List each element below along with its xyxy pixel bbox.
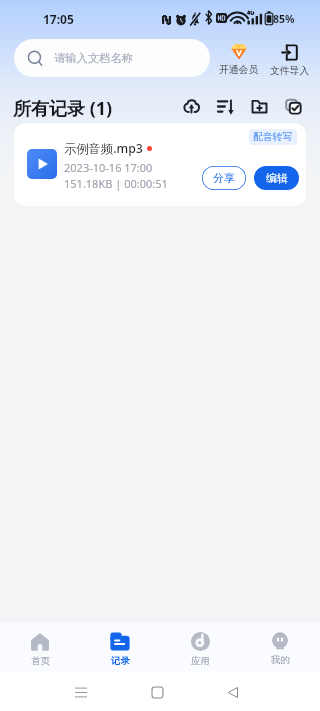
button[interactable]: Back (220, 679, 246, 705)
button[interactable]: 开通会员 (217, 43, 261, 76)
button[interactable]: 我的 (240, 623, 320, 672)
staticText: 首页 (31, 655, 50, 667)
staticText: 17:05 (43, 11, 74, 27)
staticText: 分享 (213, 171, 235, 185)
staticText: 151.18KB | 00:00:51 (64, 176, 168, 191)
button[interactable]: 应用 (160, 623, 240, 672)
button[interactable]: Home (144, 679, 170, 705)
button[interactable]: Select (283, 96, 304, 117)
button[interactable]: Recent apps (68, 679, 94, 705)
button[interactable]: 文件导入 (267, 44, 312, 77)
button[interactable]: 配音转写 (14, 123, 306, 206)
staticText: 我的 (271, 654, 290, 666)
staticText: 记录 (111, 655, 130, 667)
staticText: 2023-10-16 17:00 (64, 160, 153, 175)
staticText: 应用 (191, 655, 210, 667)
staticText: 所有记录 (1) (13, 96, 113, 121)
button[interactable]: Sort (215, 96, 236, 117)
staticText: 文件导入 (270, 65, 310, 77)
staticText: 编辑 (266, 171, 288, 185)
button[interactable]: 分享 (202, 166, 246, 190)
button[interactable]: 记录 (80, 623, 160, 672)
staticText: 示例音频.mp3 (64, 140, 143, 157)
button[interactable]: 首页 (0, 623, 80, 672)
button[interactable]: 请输入文档名称 (14, 39, 210, 77)
button[interactable]: New folder (249, 96, 270, 117)
staticText: 开通会员 (219, 64, 259, 76)
button[interactable]: 编辑 (254, 166, 299, 190)
button[interactable]: Upload to cloud (181, 96, 202, 117)
staticText: 请输入文档名称 (54, 51, 134, 65)
staticText: 配音转写 (253, 131, 293, 143)
staticText: 85% (273, 12, 295, 26)
